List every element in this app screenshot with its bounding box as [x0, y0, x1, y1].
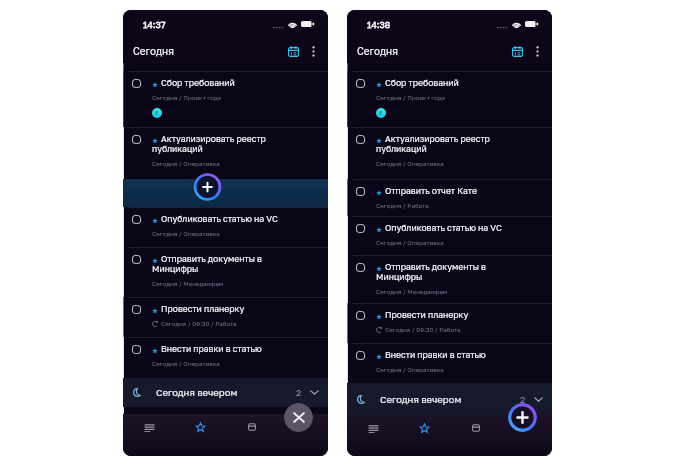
- staticText: Сегодня / Оперативка: [376, 366, 444, 373]
- staticText: Отправить документы в: [161, 254, 262, 264]
- button[interactable]: Сегодня вечером: [347, 383, 552, 415]
- button[interactable]: Внести правки в статью: [123, 337, 328, 378]
- button[interactable]: Close: [284, 403, 313, 432]
- button[interactable]: Сегодня вечером: [123, 378, 328, 407]
- button[interactable]: Отправить документы в: [347, 255, 552, 303]
- staticText: 14:38: [367, 19, 391, 30]
- staticText: Сегодня вечером: [156, 387, 238, 398]
- staticText: Сегодня / Оперативка: [152, 230, 220, 237]
- button[interactable]: Отправить отчет Кате: [347, 179, 552, 216]
- button[interactable]: Сбор требований: [347, 71, 552, 127]
- button[interactable]: Lists: [123, 414, 175, 440]
- staticText: Опубликовать статью на VC: [385, 223, 502, 233]
- staticText: публикаций: [152, 144, 203, 154]
- staticText: Сегодня / 09:30 / Работа: [385, 326, 461, 333]
- button[interactable]: Провести планерку: [123, 297, 328, 337]
- button[interactable]: Lists: [347, 415, 399, 441]
- staticText: 2: [296, 387, 302, 398]
- staticText: В: [379, 110, 383, 116]
- button[interactable]: More options: [303, 41, 323, 61]
- staticText: Сегодня / Оперативка: [376, 239, 444, 246]
- staticText: Сегодня: [133, 45, 174, 57]
- staticText: Актуализировать реестр: [161, 134, 266, 144]
- staticText: Актуализировать реестр: [385, 134, 490, 144]
- staticText: В: [155, 110, 159, 116]
- button[interactable]: Calendar: [450, 415, 501, 441]
- staticText: Сегодня / Менеджерам: [376, 288, 448, 295]
- button[interactable]: Опубликовать статью на VC: [123, 207, 328, 247]
- staticText: Внести правки в статью: [385, 350, 486, 360]
- button[interactable]: Add task: [508, 403, 537, 432]
- staticText: Сегодня / Менеджерам: [152, 280, 224, 287]
- button[interactable]: Внести правки в статью: [347, 343, 552, 383]
- staticText: Сегодня / Оперативка: [376, 160, 444, 167]
- staticText: Сбор требований: [385, 78, 459, 88]
- staticText: 2: [520, 394, 526, 405]
- staticText: Внести правки в статью: [161, 344, 262, 354]
- button[interactable]: Calendar: [507, 41, 527, 61]
- staticText: Сегодня / Проект года: [152, 94, 221, 101]
- staticText: Сбор требований: [161, 78, 235, 88]
- button[interactable]: Актуализировать реестр: [123, 127, 328, 179]
- button[interactable]: Add task here: [192, 173, 223, 201]
- button[interactable]: Calendar: [283, 41, 303, 61]
- staticText: Сегодня / Работа: [376, 202, 429, 209]
- button[interactable]: Today: [399, 415, 450, 441]
- staticText: Сегодня / 09:30 / Работа: [161, 320, 237, 327]
- staticText: Минцифры: [376, 272, 423, 282]
- staticText: Минцифры: [152, 264, 199, 274]
- staticText: Сегодня вечером: [380, 394, 462, 405]
- button[interactable]: Calendar: [226, 414, 277, 440]
- staticText: Сегодня / Проект года: [376, 94, 445, 101]
- button[interactable]: Провести планерку: [347, 303, 552, 343]
- button[interactable]: Отправить документы в: [123, 247, 328, 297]
- staticText: Отправить документы в: [385, 262, 486, 272]
- staticText: Провести планерку: [161, 304, 245, 314]
- staticText: публикаций: [376, 144, 427, 154]
- staticText: Отправить отчет Кате: [385, 186, 477, 196]
- button[interactable]: Актуализировать реестр: [347, 127, 552, 179]
- staticText: Опубликовать статью на VC: [161, 214, 278, 224]
- staticText: Сегодня: [357, 45, 398, 57]
- button[interactable]: Today: [175, 414, 226, 440]
- staticText: Сегодня / Оперативка: [152, 160, 220, 167]
- staticText: Провести планерку: [385, 310, 469, 320]
- button[interactable]: Сбор требований: [123, 71, 328, 127]
- button[interactable]: More options: [527, 41, 547, 61]
- button[interactable]: [123, 179, 328, 207]
- staticText: Сегодня / Оперативка: [152, 360, 220, 367]
- staticText: 14:37: [143, 19, 166, 30]
- button[interactable]: Опубликовать статью на VC: [347, 216, 552, 255]
